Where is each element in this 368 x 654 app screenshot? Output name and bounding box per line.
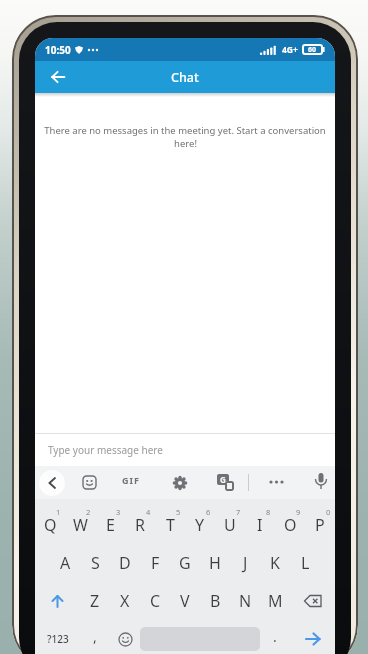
staticText: 9 [296,507,301,517]
staticText: 2 [86,507,91,517]
button[interactable]: C [140,582,170,620]
staticText: K [270,552,280,574]
staticText: 0 [326,507,331,517]
staticText: S [91,552,100,574]
button[interactable]: I [245,506,275,544]
button[interactable]: O [275,506,305,544]
staticText: Type your message here [48,443,163,457]
staticText: P [315,514,325,536]
staticText: L [301,552,310,574]
staticText: A [60,552,71,574]
staticText: D [119,552,131,574]
staticText: 6 [206,507,211,517]
staticText: 1 [56,507,61,517]
staticText: 4 [146,507,151,517]
button[interactable]: E [95,506,125,544]
button[interactable]: P [305,506,335,544]
staticText: N [239,590,252,612]
button[interactable]: G [170,544,200,582]
staticText: Chat [171,69,199,86]
button[interactable]: N [230,582,260,620]
button[interactable]: Y [185,506,215,544]
staticText: 10:50 [45,43,71,57]
button[interactable]: V [170,582,200,620]
button[interactable]: H [200,544,230,582]
staticText: O [284,514,297,536]
button[interactable]: R [125,506,155,544]
staticText: F [151,552,160,574]
staticText: J [243,552,248,574]
staticText: C [150,590,161,612]
staticText: V [180,590,190,612]
button[interactable] [290,582,335,620]
staticText: Q [44,514,57,536]
button[interactable]: M [260,582,290,620]
button[interactable]: F [140,544,170,582]
staticText: B [210,590,221,612]
staticText: R [135,514,145,536]
button[interactable]: Z [80,582,110,620]
button[interactable] [172,475,188,491]
button[interactable]: Q [35,506,65,544]
staticText: There are no messages in the meeting yet… [44,124,326,137]
button[interactable]: Type your message here [35,434,335,466]
button[interactable]: J [230,544,260,582]
button[interactable]: W [65,506,95,544]
button[interactable] [35,582,80,620]
button[interactable]: D [110,544,140,582]
staticText: Y [195,514,205,536]
staticText: G [179,552,191,574]
button[interactable]: U [215,506,245,544]
button[interactable]: A [50,544,80,582]
staticText: GIF [122,474,140,486]
staticText: 8 [266,507,271,517]
staticText: I [257,514,263,536]
button[interactable] [82,475,98,491]
button[interactable]: B [200,582,230,620]
button[interactable] [290,620,335,654]
staticText: , [93,627,97,646]
staticText: here! [174,137,197,150]
button[interactable] [110,620,140,654]
button[interactable] [268,479,286,485]
staticText: ?123 [47,632,69,646]
button[interactable]: T [155,506,185,544]
staticText: G [220,474,226,485]
staticText: Z [90,590,100,612]
staticText: 5 [176,507,181,517]
staticText: T [166,514,175,536]
button[interactable]: X [110,582,140,620]
button[interactable] [47,66,69,88]
button[interactable] [313,472,329,494]
button[interactable]: ?123 [35,620,80,654]
staticText: U [224,514,236,536]
button[interactable]: GIF [122,474,140,486]
staticText: 60 [308,45,317,55]
staticText: E [106,514,115,536]
button[interactable]: . [260,620,290,654]
staticText: 4G+ [282,44,298,56]
staticText: W [73,514,88,536]
button[interactable]: , [80,620,110,654]
staticText: M [268,590,283,612]
staticText: H [209,552,221,574]
staticText: . [273,627,277,646]
button[interactable]: L [290,544,320,582]
button[interactable]: S [80,544,110,582]
button[interactable]: K [260,544,290,582]
staticText: X [120,590,130,612]
button[interactable]: G [217,474,234,491]
staticText: 3 [116,507,121,517]
button[interactable] [39,470,65,496]
staticText: 7 [236,507,241,517]
